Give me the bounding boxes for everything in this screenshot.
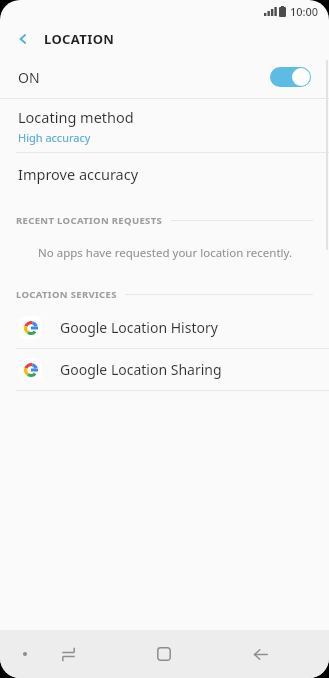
staticText: High accuracy xyxy=(18,130,91,145)
button[interactable]: ON xyxy=(0,56,329,98)
button[interactable]: Back xyxy=(8,24,38,54)
staticText: Improve accuracy xyxy=(18,164,139,184)
staticText: No apps have requested your location rec… xyxy=(38,245,292,261)
staticText: ON xyxy=(18,68,40,87)
staticText: LOCATION SERVICES xyxy=(16,288,117,301)
staticText: 10:00 xyxy=(290,4,319,19)
button[interactable]: Google Location History xyxy=(0,307,329,348)
staticText: Locating method xyxy=(18,107,134,127)
button[interactable]: Recent apps xyxy=(46,632,90,676)
button[interactable]: Locating method xyxy=(0,99,329,152)
button[interactable]: Home xyxy=(142,632,186,676)
button[interactable]: Improve accuracy xyxy=(0,153,329,195)
button[interactable]: Google Location Sharing xyxy=(0,349,329,390)
staticText: Google Location History xyxy=(60,318,218,337)
staticText: RECENT LOCATION REQUESTS xyxy=(16,214,163,227)
staticText: LOCATION xyxy=(44,30,115,48)
staticText: Google Location Sharing xyxy=(60,360,222,379)
button[interactable]: Back xyxy=(238,632,282,676)
